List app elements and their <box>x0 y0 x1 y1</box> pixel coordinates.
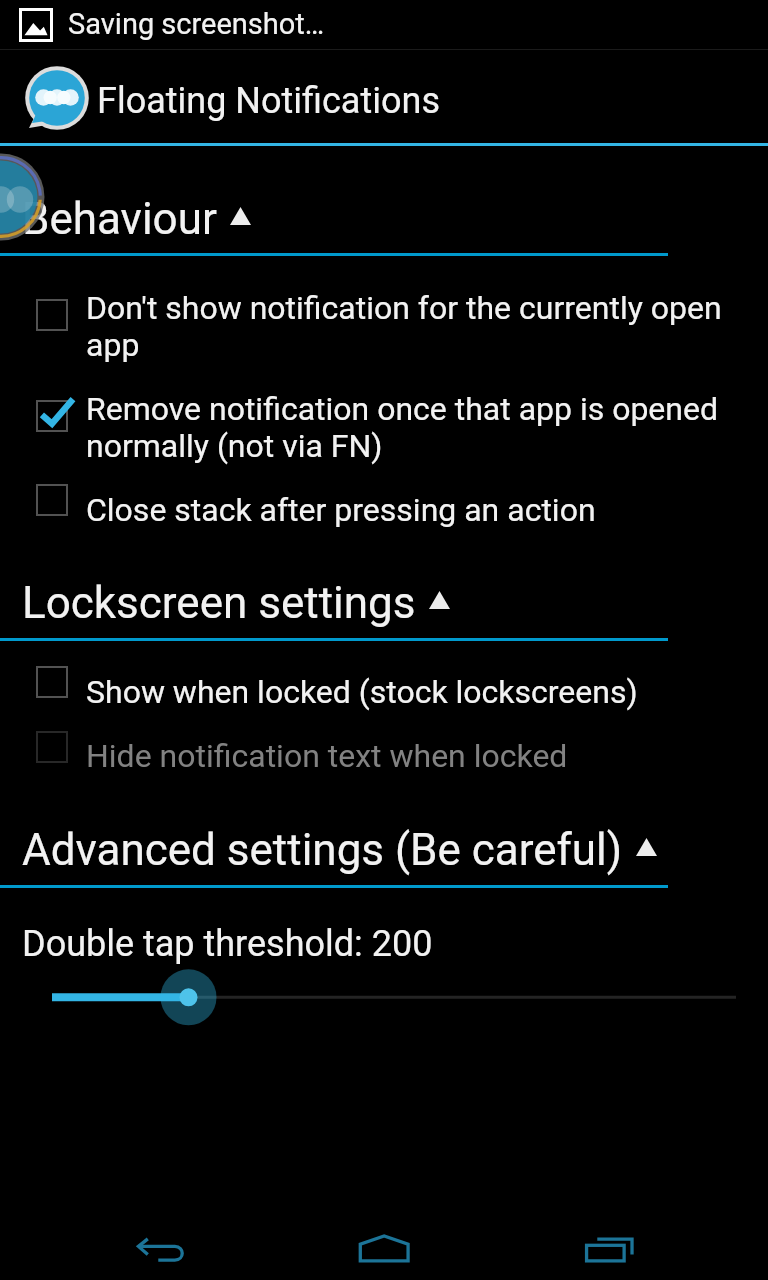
button[interactable] <box>0 652 768 710</box>
button[interactable] <box>0 470 768 528</box>
staticText: Advanced settings (Be careful) <box>22 824 623 876</box>
button[interactable]: Behaviour <box>0 193 768 245</box>
button[interactable] <box>0 386 768 444</box>
staticText: Remove notification once that app is ope… <box>86 391 736 465</box>
staticText: Lockscreen settings <box>22 577 416 629</box>
button[interactable]: Double tap threshold slider <box>0 965 768 1031</box>
staticText: Saving screenshot… <box>68 7 325 41</box>
staticText: Show when locked (stock lockscreens) <box>86 674 736 711</box>
button[interactable]: Lockscreen settings <box>0 577 768 629</box>
button[interactable]: Back <box>104 1210 216 1280</box>
staticText: Hide notification text when locked <box>86 738 736 775</box>
button[interactable]: Recent apps <box>552 1210 664 1280</box>
staticText: Don't show notification for the currentl… <box>86 290 736 364</box>
staticText: Close stack after pressing an action <box>86 492 736 529</box>
staticText: Double tap threshold: 200 <box>22 923 433 965</box>
button[interactable]: Home <box>328 1210 440 1280</box>
staticText: Behaviour <box>22 193 217 245</box>
button[interactable] <box>0 717 768 775</box>
staticText: Floating Notifications <box>97 80 440 122</box>
button[interactable] <box>0 285 768 343</box>
button[interactable]: Advanced settings (Be careful) <box>0 824 768 876</box>
button[interactable]: Floating notification bubble <box>0 150 48 244</box>
